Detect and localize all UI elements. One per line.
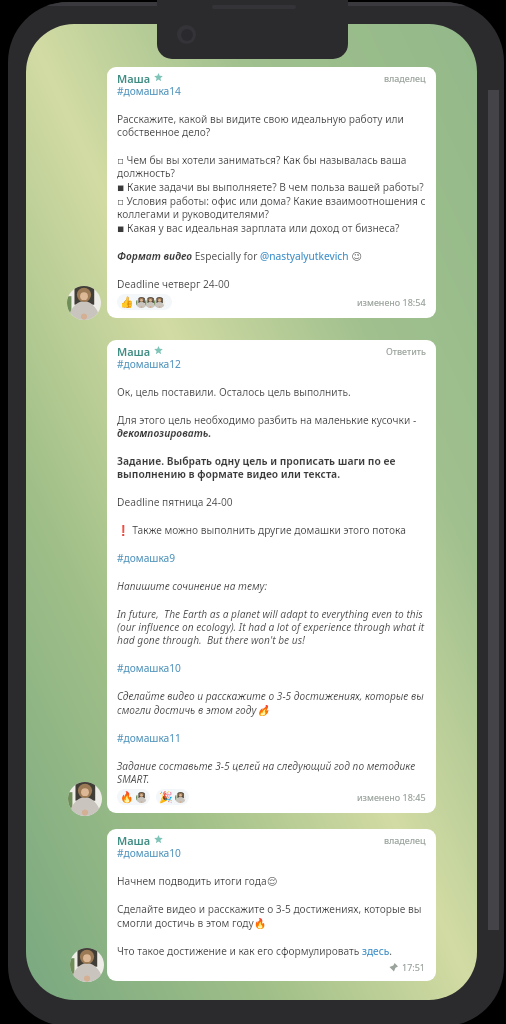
staticText: Начнем подводить итоги года😌 [117, 874, 278, 888]
staticText: Deadline четверг 24-00 [117, 277, 230, 291]
button[interactable]: Маша [107, 340, 436, 813]
staticText: Задание. Выбрать одну цель и прописать ш… [117, 454, 426, 481]
staticText: изменено 18:54 [357, 296, 426, 308]
button[interactable]: Reaction 👍 [117, 294, 172, 310]
staticText: #домашка9 [117, 551, 176, 565]
button[interactable]: Reaction 🔥 [117, 789, 150, 805]
staticText: Маша [117, 71, 151, 84]
button[interactable]: Profile photo [70, 948, 104, 982]
staticText: владелец [384, 834, 426, 846]
staticText: Ок, цель поставили. Осталось цель выполн… [117, 385, 351, 399]
staticText: Расскажите, какой вы видите свою идеальн… [117, 112, 426, 139]
staticText: Для этого цель необходимо разбить на мал… [117, 413, 426, 440]
staticText: Маша [117, 344, 151, 357]
staticText: Маша [117, 833, 151, 846]
staticText: ▫️ Чем бы вы хотели заниматься? Как бы н… [117, 153, 426, 180]
staticText: ◾ Какие задачи вы выполняете? В чем поль… [117, 180, 424, 194]
staticText: ❗ Также можно выполнить другие домашки э… [117, 523, 406, 537]
staticText: 🔥 [120, 791, 134, 804]
button[interactable]: Маша [107, 67, 436, 318]
staticText: Напишите сочинение на тему: [117, 579, 268, 593]
staticText: ▫️ Условия работы: офис или дома? Какие … [117, 194, 426, 221]
staticText: изменено 18:45 [357, 791, 426, 803]
staticText: #домашка10 [117, 846, 181, 860]
button[interactable]: Profile photo [67, 286, 101, 320]
staticText: Формат видео Especially for @nastyalyutk… [117, 249, 362, 263]
staticText: Ответить [386, 345, 426, 357]
staticText: Что такое достижение и как его сформулир… [117, 944, 393, 958]
staticText: Deadline пятница 24-00 [117, 495, 233, 509]
button[interactable]: Маша [107, 829, 436, 981]
staticText: #домашка12 [117, 357, 181, 371]
staticText: 👍 [120, 296, 134, 309]
button[interactable]: Reaction 🎉 [156, 789, 189, 805]
staticText: #домашка10 [117, 661, 181, 675]
staticText: 🎉 [159, 791, 173, 804]
staticText: In future, The Earth as a planet will ad… [117, 607, 426, 647]
staticText: #домашка11 [117, 731, 181, 745]
staticText: Задание составьте 3-5 целей на следующий… [117, 759, 426, 786]
staticText: Сделайте видео и расскажите о 3-5 достиж… [117, 902, 426, 930]
staticText: ◾ Какая у вас идеальная зарплата или дох… [117, 221, 400, 235]
staticText: Сделайте видео и расскажите о 3-5 достиж… [117, 689, 426, 717]
staticText: #домашка14 [117, 84, 181, 98]
button[interactable]: Profile photo [68, 782, 102, 816]
staticText: 17:51 [402, 961, 426, 973]
staticText: владелец [384, 72, 426, 84]
